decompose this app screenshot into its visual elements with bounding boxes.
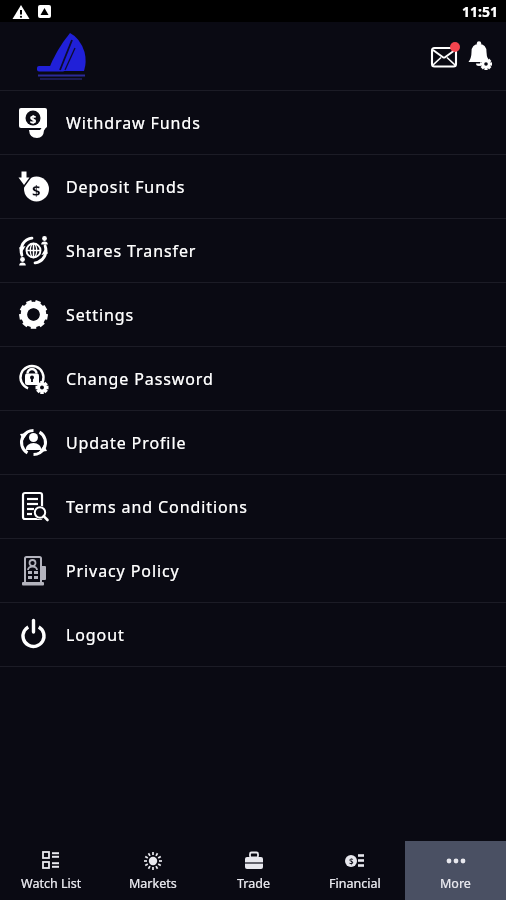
staticText: $: [32, 180, 41, 200]
button[interactable]: $: [0, 91, 506, 155]
staticText: Trade: [237, 875, 270, 892]
staticText: Change Password: [66, 368, 214, 390]
staticText: $: [349, 856, 354, 867]
button[interactable]: Update Profile: [0, 411, 506, 475]
button[interactable]: Logout: [0, 603, 506, 667]
button[interactable]: Change Password: [0, 347, 506, 411]
staticText: Financial: [329, 875, 381, 892]
staticText: Deposit Funds: [66, 176, 186, 198]
staticText: More: [440, 875, 471, 892]
staticText: Update Profile: [66, 432, 187, 454]
staticText: 11:51: [462, 2, 498, 21]
button[interactable]: Settings: [0, 283, 506, 347]
button[interactable]: More: [405, 841, 506, 900]
button[interactable]: $: [304, 841, 405, 900]
staticText: Logout: [66, 624, 125, 646]
button[interactable]: [430, 40, 458, 72]
button[interactable]: $: [0, 155, 506, 219]
button[interactable]: Shares Transfer: [0, 219, 506, 283]
staticText: Shares Transfer: [66, 240, 197, 262]
staticText: Markets: [129, 875, 177, 892]
button[interactable]: Trade: [203, 841, 304, 900]
staticText: $: [30, 111, 37, 126]
button[interactable]: Watch List: [0, 841, 102, 900]
staticText: Withdraw Funds: [66, 112, 201, 134]
staticText: Privacy Policy: [66, 560, 180, 582]
staticText: Watch List: [21, 875, 82, 892]
staticText: Terms and Conditions: [66, 496, 248, 518]
staticText: Settings: [66, 304, 135, 326]
button[interactable]: Privacy Policy: [0, 539, 506, 603]
button[interactable]: Markets: [102, 841, 203, 900]
button[interactable]: [466, 40, 492, 72]
button[interactable]: Terms and Conditions: [0, 475, 506, 539]
